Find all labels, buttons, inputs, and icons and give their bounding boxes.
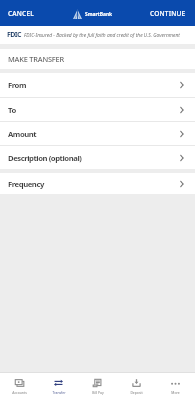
button[interactable]: Bill Pay <box>78 373 117 400</box>
button[interactable]: Deposit <box>117 373 156 400</box>
button[interactable]: More <box>156 373 195 400</box>
button[interactable]: From <box>0 73 195 97</box>
staticText: To <box>8 105 180 115</box>
button[interactable]: CONTINUE <box>141 4 195 23</box>
staticText: SmartBank <box>85 11 113 18</box>
staticText: Accounts <box>12 390 27 395</box>
staticText: More <box>171 390 180 395</box>
staticText: Transfer <box>52 390 66 395</box>
button[interactable]: Transfer <box>39 373 78 400</box>
button[interactable]: Description (optional) <box>0 146 195 169</box>
button[interactable]: Frequency <box>0 173 195 194</box>
button[interactable]: Amount <box>0 122 195 145</box>
staticText: MAKE TRANSFER <box>8 54 64 64</box>
staticText: Description (optional) <box>8 153 180 163</box>
button[interactable]: CANCEL <box>0 4 42 23</box>
staticText: From <box>8 80 180 90</box>
staticText: FDIC <box>7 30 21 40</box>
button[interactable]: To <box>0 98 195 121</box>
staticText: Amount <box>8 129 180 139</box>
staticText: Deposit <box>130 390 143 395</box>
button[interactable]: Accounts <box>0 373 39 400</box>
staticText: FDIC-Insured - Backed by the full faith … <box>24 32 180 39</box>
staticText: CANCEL <box>8 9 34 18</box>
staticText: Bill Pay <box>92 390 104 395</box>
staticText: CONTINUE <box>150 9 186 18</box>
staticText: Frequency <box>8 179 180 189</box>
